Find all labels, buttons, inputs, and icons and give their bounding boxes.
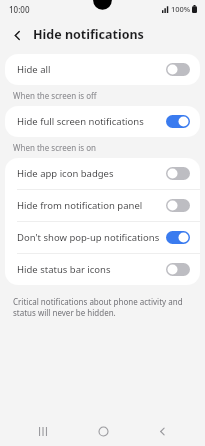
staticText: Hide from notification panel (17, 199, 160, 212)
staticText: Hide app icon badges (17, 167, 160, 180)
button[interactable]: Don't show pop-up notifications (5, 222, 200, 253)
button[interactable]: Off (166, 167, 190, 180)
staticText: When the screen is off (13, 90, 97, 101)
staticText: Hide notifications (33, 26, 144, 43)
button[interactable]: On (166, 231, 190, 244)
button[interactable]: Hide app icon badges (5, 158, 200, 189)
button[interactable]: Off (166, 199, 190, 212)
staticText: 10:00 (9, 4, 30, 15)
button[interactable]: Off (166, 263, 190, 276)
button[interactable]: Off (166, 63, 190, 76)
button[interactable]: On (166, 115, 190, 128)
button[interactable]: Hide from notification panel (5, 190, 200, 221)
button[interactable]: Back (145, 416, 179, 446)
staticText: When the screen is on (13, 142, 96, 153)
button[interactable]: Back (5, 23, 29, 47)
button[interactable]: Recents (26, 416, 60, 446)
staticText: Critical notifications about phone activ… (13, 296, 192, 319)
staticText: Hide full screen notifications (17, 115, 160, 128)
button[interactable]: Hide status bar icons (5, 254, 200, 285)
staticText: Don't show pop-up notifications (17, 231, 160, 244)
staticText: Hide all (17, 63, 160, 76)
staticText: Hide status bar icons (17, 263, 160, 276)
button[interactable]: Hide all (5, 54, 200, 85)
button[interactable]: Hide full screen notifications (5, 106, 200, 137)
button[interactable]: Home (86, 416, 120, 446)
staticText: 100% (171, 4, 191, 14)
